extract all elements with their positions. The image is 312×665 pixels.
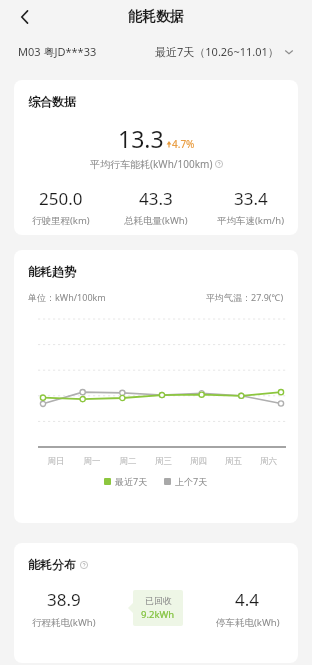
staticText: 4.4 [235, 588, 260, 611]
staticText: 38.9 [47, 588, 81, 611]
staticText: 平均车速(km/h) [217, 214, 285, 227]
staticText: 最近7天 [115, 475, 148, 487]
staticText: 周一 [74, 456, 110, 467]
staticText: 单位：kWh/100km [28, 291, 106, 303]
staticText: 9.2kWh [141, 608, 175, 621]
staticText: 周五 [216, 456, 251, 467]
staticText: 最近7天（10.26~11.01） [155, 44, 279, 59]
staticText: 停车耗电(kWh) [216, 616, 280, 629]
staticText: 周日 [38, 456, 74, 467]
staticText: M03 粤JD***33 [18, 44, 97, 59]
staticText: 能耗趋势 [28, 264, 76, 279]
staticText: 周四 [181, 456, 216, 467]
staticText: 上个7天 [175, 475, 208, 487]
staticText: 平均气温：27.9(℃) [206, 291, 284, 303]
staticText: 综合数据 [28, 94, 76, 109]
staticText: 平均行车能耗(kWh/100km) [90, 157, 213, 171]
staticText: 行程耗电(kWh) [32, 616, 96, 629]
staticText: 43.3 [139, 187, 173, 210]
staticText: 能耗数据 [128, 8, 184, 26]
staticText: 250.0 [39, 187, 83, 210]
staticText: 周三 [146, 456, 181, 467]
staticText: 4.7% [172, 137, 195, 151]
staticText: 33.4 [234, 187, 268, 210]
button[interactable]: Back [10, 2, 40, 32]
staticText: 总耗电量(kWh) [124, 214, 188, 227]
staticText: 13.3 [118, 123, 164, 154]
staticText: 行驶里程(km) [32, 214, 90, 227]
staticText: 周六 [251, 456, 286, 467]
button[interactable]: 最近7天（10.26~11.01） [155, 44, 294, 59]
staticText: 能耗分布 [28, 557, 76, 572]
staticText: 周二 [110, 456, 146, 467]
staticText: 已回收 [145, 595, 172, 606]
